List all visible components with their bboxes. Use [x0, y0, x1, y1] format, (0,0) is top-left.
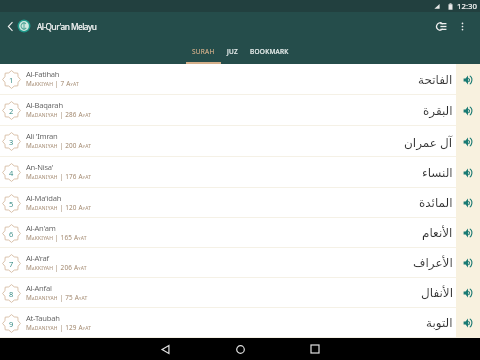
staticText: 12:30: [457, 1, 477, 12]
staticText: MADANIYAH | 176 AYAT: [26, 172, 92, 181]
button[interactable]: Play audio: [456, 218, 480, 248]
staticText: 4: [9, 168, 14, 178]
button[interactable]: 5: [0, 188, 456, 218]
staticText: الأنعام: [422, 226, 453, 240]
staticText: An-Nisa': [26, 162, 54, 172]
staticText: MADANIYAH | 129 AYAT: [26, 323, 92, 332]
staticText: Al-Qur'an Melayu: [37, 21, 97, 32]
staticText: النساء: [422, 166, 453, 180]
button[interactable]: Search: [430, 15, 452, 37]
staticText: 5: [9, 199, 14, 209]
staticText: MADANIYAH | 75 AYAT: [26, 293, 88, 302]
button[interactable]: 1: [0, 64, 456, 95]
staticText: JUZ: [227, 47, 238, 56]
staticText: Al-An'am: [26, 223, 56, 233]
staticText: Al-Ma'idah: [26, 193, 62, 203]
button[interactable]: 7: [0, 248, 456, 278]
staticText: At-Taubah: [26, 313, 60, 323]
staticText: البقرة: [423, 104, 453, 118]
staticText: Ali 'Imran: [26, 131, 58, 141]
button[interactable]: 9: [0, 308, 456, 338]
staticText: 9: [9, 319, 14, 329]
staticText: آل عمران: [404, 134, 453, 150]
staticText: 1: [9, 75, 14, 85]
staticText: SURAH: [192, 47, 215, 56]
staticText: MADANIYAH | 120 AYAT: [26, 203, 92, 212]
button[interactable]: SURAH: [186, 40, 221, 64]
staticText: 6: [9, 229, 14, 239]
staticText: التوبة: [426, 316, 453, 330]
staticText: 7: [9, 259, 14, 269]
staticText: المائدة: [419, 196, 453, 210]
button[interactable]: Home: [220, 338, 260, 360]
button[interactable]: 2: [0, 95, 456, 126]
button[interactable]: Play audio: [456, 248, 480, 278]
button[interactable]: BOOKMARK: [244, 40, 295, 64]
staticText: BOOKMARK: [250, 47, 289, 56]
staticText: 8: [9, 289, 14, 299]
button[interactable]: 4: [0, 157, 456, 188]
button[interactable]: More options: [452, 16, 472, 36]
staticText: 3: [9, 137, 14, 147]
button[interactable]: Recent apps: [295, 338, 335, 360]
button[interactable]: Play audio: [456, 188, 480, 218]
staticText: MADANIYAH | 200 AYAT: [26, 141, 92, 150]
button[interactable]: 3: [0, 126, 456, 157]
button[interactable]: Play audio: [456, 157, 480, 188]
staticText: Al-Baqarah: [26, 100, 63, 110]
staticText: الفاتحة: [418, 73, 453, 87]
button[interactable]: 6: [0, 218, 456, 248]
button[interactable]: Play audio: [456, 126, 480, 157]
staticText: Al-Fatihah: [26, 69, 60, 79]
button[interactable]: Back: [145, 338, 185, 360]
staticText: MAKKIYAH | 165 AYAT: [26, 233, 87, 242]
staticText: MAKKIYAH | 206 AYAT: [26, 263, 87, 272]
staticText: 2: [9, 106, 14, 116]
staticText: الأعراف: [413, 256, 453, 270]
staticText: Al-Anfal: [26, 283, 52, 293]
button[interactable]: Navigate up: [4, 20, 17, 33]
button[interactable]: Play audio: [456, 95, 480, 126]
staticText: MADANIYAH | 286 AYAT: [26, 110, 92, 119]
staticText: Al-A'raf: [26, 253, 49, 263]
staticText: الأنفال: [421, 286, 453, 300]
button[interactable]: Play audio: [456, 308, 480, 338]
button[interactable]: Play audio: [456, 278, 480, 308]
button[interactable]: 8: [0, 278, 456, 308]
button[interactable]: JUZ: [221, 40, 244, 64]
staticText: MAKKIYAH | 7 AYAT: [26, 79, 79, 88]
button[interactable]: Play audio: [456, 64, 480, 95]
